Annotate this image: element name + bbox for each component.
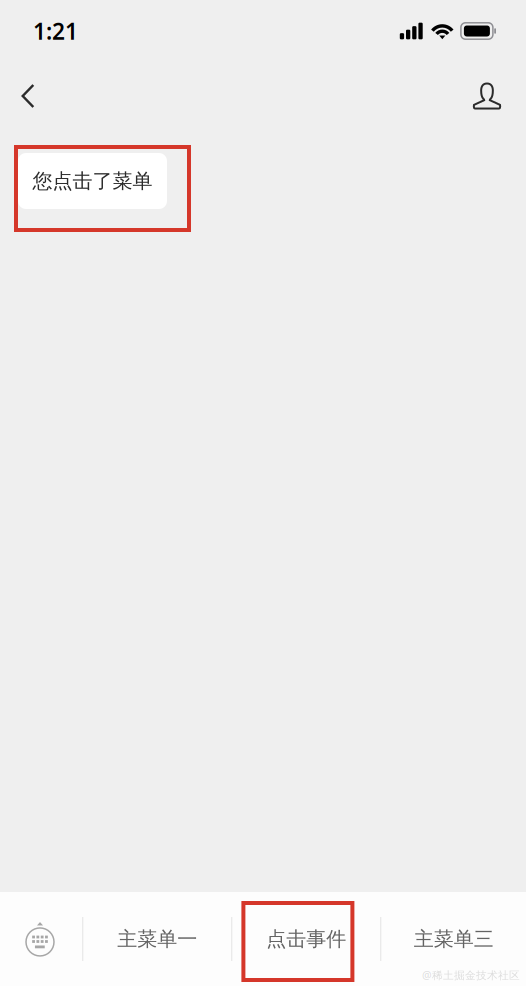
button[interactable]: 点击事件 xyxy=(232,892,380,986)
button[interactable]: Back xyxy=(4,62,52,130)
staticText: 主菜单三 xyxy=(414,927,494,951)
button[interactable]: Contacts xyxy=(462,62,512,130)
staticText: 1:21 xyxy=(33,16,78,46)
button[interactable]: Keyboard xyxy=(0,892,82,986)
staticText: 您点击了菜单 xyxy=(32,169,152,193)
staticText: 点击事件 xyxy=(266,927,346,951)
button[interactable]: 主菜单三 xyxy=(381,892,526,986)
staticText: 主菜单一 xyxy=(117,927,197,951)
button[interactable]: 主菜单一 xyxy=(83,892,231,986)
staticText: @稀土掘金技术社区 xyxy=(422,968,520,982)
